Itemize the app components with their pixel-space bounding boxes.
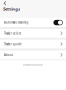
staticText: Settings [3,6,20,12]
button[interactable]: About [0,50,66,59]
staticText: Tracker guide [4,42,22,46]
button[interactable]: Tracker select [0,29,66,38]
staticText: Tracker select [4,32,21,35]
staticText: Automatic standby [4,21,28,24]
staticText: About [4,53,13,57]
button[interactable]: Tracker guide [0,40,66,49]
button[interactable]: Back [0,0,6,6]
staticText: Disconnection [23,63,43,66]
button[interactable]: Disconnection [0,60,66,69]
button[interactable]: Automatic standby [0,18,66,27]
